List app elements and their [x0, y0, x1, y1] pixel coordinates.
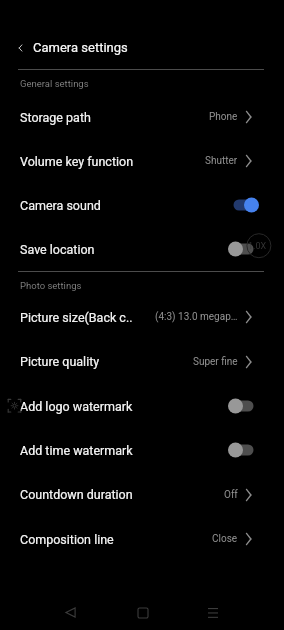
staticText: Close — [212, 533, 238, 545]
button[interactable]: Save location — [0, 227, 284, 271]
button[interactable]: Back — [53, 595, 88, 630]
button[interactable]: Composition line — [0, 517, 284, 561]
staticText: Picture quality — [20, 354, 100, 369]
staticText: Camera settings — [33, 40, 128, 55]
staticText: 1.0X — [248, 241, 267, 252]
button[interactable]: Add logo watermark — [0, 384, 284, 428]
button[interactable]: Picture size(Back c.. — [0, 295, 284, 339]
button[interactable]: Picture quality — [0, 339, 284, 384]
staticText: Phone — [209, 111, 238, 123]
staticText: Shutter — [205, 155, 238, 167]
staticText: General settings — [20, 78, 89, 89]
button[interactable]: Recent apps — [195, 595, 230, 630]
staticText: Countdown duration — [20, 487, 133, 502]
staticText: Save location — [20, 242, 95, 257]
button[interactable]: Countdown duration — [0, 472, 284, 517]
button[interactable]: Back — [11, 38, 31, 58]
button[interactable]: Storage path — [0, 95, 284, 139]
staticText: Volume key function — [20, 154, 134, 169]
staticText: Composition line — [20, 532, 114, 547]
button[interactable]: Volume key function — [0, 139, 284, 183]
staticText: (4:3) 13.0 megap… — [155, 311, 238, 323]
staticText: Off — [224, 489, 238, 501]
button[interactable]: Camera sound — [0, 183, 284, 227]
staticText: Picture size(Back c.. — [20, 310, 133, 325]
other: Off — [228, 442, 259, 458]
staticText: Camera sound — [20, 198, 101, 213]
staticText: Photo settings — [20, 280, 82, 291]
button[interactable]: Home — [125, 595, 160, 630]
other: Off — [228, 398, 259, 414]
other: On — [228, 197, 259, 213]
staticText: Add logo watermark — [20, 399, 133, 414]
button[interactable]: Add time watermark — [0, 428, 284, 472]
staticText: Add time watermark — [20, 443, 133, 458]
staticText: Super fine — [193, 356, 238, 368]
staticText: Storage path — [20, 110, 91, 125]
other: Off — [228, 241, 259, 257]
